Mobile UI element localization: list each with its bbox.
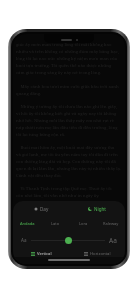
staticText: Raleway (103, 221, 119, 226)
staticText: Day (40, 206, 49, 212)
staticText: Vì Thanh Tịnh trong tập Quê mẹ. Thuở ấy … (16, 185, 112, 191)
staticText: nhiều và trên không có những đám mây bàn… (16, 48, 119, 54)
staticText: Aa (21, 237, 27, 243)
button[interactable]: Lora (69, 216, 97, 230)
staticText: Horizontal (90, 251, 111, 257)
staticText: tôi lại tưng bừng rộn rã. (16, 131, 66, 137)
staticText: quen đi lại lắm lần, nhưng lần này tự nh… (16, 165, 122, 171)
staticText: Lora (79, 221, 88, 226)
button[interactable]: Night (69, 202, 125, 216)
staticText: Mấy cánh hoa tươi mỉm cười giữa bầu trời… (16, 83, 119, 89)
staticText: và gió lạnh, mẹ tôi âu yếm nắm tay tôi d… (16, 151, 118, 157)
staticText: núp dưới nón mẹ lần đầu tiên đi đến trườ… (16, 124, 118, 130)
button[interactable]: Raleway (97, 216, 125, 230)
staticText: Buổi mai hôm ấy, một buổi mai đầy sương … (16, 144, 115, 150)
staticText: con đường làng dài và hẹp. Con đường này… (16, 158, 116, 164)
staticText: còn nhỏ lắm, tôi vẫn nhớ như in ngày ấy. (16, 192, 100, 198)
staticText: Lato (51, 221, 60, 226)
button[interactable] (31, 236, 105, 244)
staticText: Cảnh vật đều thay đổi. (16, 172, 62, 178)
button[interactable]: Andada (13, 216, 41, 230)
staticText: Vertical (37, 251, 52, 257)
staticText: Night (94, 206, 106, 212)
staticText: cảm giác trong sáng ấy nảy nở trong lòng… (16, 69, 102, 75)
staticText: buổi tựu trường. Tôi quên thế nào được n… (16, 62, 112, 68)
button[interactable]: Horizontal (69, 247, 125, 261)
staticText: vì hồi ấy tôi không biết ghi và ngày nay… (16, 110, 117, 116)
button[interactable]: Lato (41, 216, 69, 230)
button[interactable]: Vertical (13, 247, 69, 261)
button[interactable]: Day (13, 202, 69, 216)
staticText: giác ấy mơn man trong lòng tôi mãi không… (16, 41, 112, 47)
staticText: Andada (20, 221, 35, 226)
staticText: quang đãng. (16, 90, 42, 96)
staticText: lòng tôi lại nao nức những kỷ niệm mơn m… (16, 55, 118, 61)
staticText: Những ý tưởng ấy tôi chưa lần nào ghi lê… (16, 103, 117, 109)
staticText: Aa (109, 236, 117, 245)
staticText: nhớ hết. Nhưng mỗi lần thấy mấy em nhỏ r… (16, 117, 115, 123)
